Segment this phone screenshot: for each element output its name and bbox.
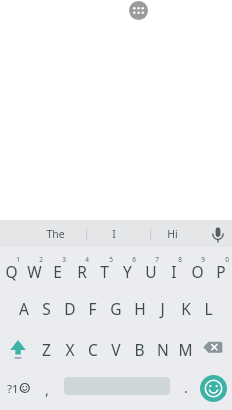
button[interactable]: Z xyxy=(35,329,58,370)
button[interactable]: , xyxy=(35,370,58,410)
button[interactable]: U xyxy=(139,247,162,288)
button[interactable]: I xyxy=(94,220,134,247)
button[interactable]: 8 xyxy=(175,254,185,264)
staticText: The xyxy=(46,227,65,241)
staticText: S xyxy=(42,298,51,319)
button[interactable] xyxy=(203,220,232,247)
button[interactable]: A xyxy=(12,288,35,329)
button[interactable]: Hi xyxy=(152,220,192,247)
button[interactable]: C xyxy=(81,329,104,370)
button[interactable]: 5 xyxy=(106,254,116,264)
staticText: L xyxy=(204,298,213,319)
button[interactable]: 2 xyxy=(36,254,46,264)
staticText: A xyxy=(19,298,29,319)
button[interactable]: 1 xyxy=(13,254,23,264)
button[interactable]: T xyxy=(93,247,116,288)
staticText: J xyxy=(160,298,165,319)
staticText: 9 xyxy=(201,255,205,264)
button[interactable]: G xyxy=(104,288,127,329)
staticText: V xyxy=(111,339,121,360)
button[interactable] xyxy=(129,1,148,20)
staticText: Y xyxy=(123,261,132,282)
staticText: 0 xyxy=(225,255,229,264)
staticText: T xyxy=(100,261,109,282)
staticText: ?1 xyxy=(7,381,19,397)
button[interactable]: I xyxy=(162,247,185,288)
button[interactable]: 4 xyxy=(82,254,92,264)
button[interactable]: H xyxy=(128,288,151,329)
button[interactable]: R xyxy=(70,247,93,288)
button[interactable]: 6 xyxy=(129,254,139,264)
button[interactable]: W xyxy=(23,247,46,288)
staticText: Z xyxy=(42,339,51,360)
staticText: E xyxy=(53,261,62,282)
button[interactable]: 0 xyxy=(222,254,232,264)
staticText: Q xyxy=(5,261,18,282)
button[interactable]: V xyxy=(104,329,127,370)
button[interactable]: The xyxy=(35,220,75,247)
button[interactable]: N xyxy=(151,329,174,370)
staticText: I xyxy=(112,227,116,241)
staticText: B xyxy=(134,339,145,360)
staticText: R xyxy=(77,261,87,282)
staticText: 8 xyxy=(178,255,182,264)
button[interactable]: J xyxy=(151,288,174,329)
staticText: I xyxy=(171,261,177,282)
button[interactable] xyxy=(197,329,232,370)
button[interactable]: 3 xyxy=(59,254,69,264)
button[interactable]: B xyxy=(128,329,151,370)
button[interactable]: S xyxy=(35,288,58,329)
staticText: 5 xyxy=(109,255,113,264)
button[interactable]: Q xyxy=(0,247,23,288)
staticText: D xyxy=(64,298,76,319)
button[interactable]: O xyxy=(186,247,209,288)
staticText: X xyxy=(65,339,75,360)
staticText: H xyxy=(134,298,146,319)
staticText: F xyxy=(88,298,97,319)
staticText: , xyxy=(45,380,49,399)
staticText: K xyxy=(181,298,191,319)
staticText: P xyxy=(216,261,226,282)
staticText: 7 xyxy=(155,255,159,264)
button[interactable]: . xyxy=(174,370,197,410)
button[interactable]: ?1 xyxy=(0,370,35,410)
staticText: M xyxy=(178,339,193,360)
staticText: O xyxy=(191,261,204,282)
button[interactable] xyxy=(0,329,35,370)
button[interactable]: X xyxy=(58,329,81,370)
staticText: C xyxy=(88,339,98,360)
button[interactable]: K xyxy=(174,288,197,329)
button[interactable]: E xyxy=(46,247,69,288)
staticText: 2 xyxy=(39,255,43,264)
staticText: 6 xyxy=(132,255,136,264)
button[interactable]: M xyxy=(174,329,197,370)
staticText: N xyxy=(157,339,169,360)
button[interactable]: F xyxy=(81,288,104,329)
button[interactable] xyxy=(200,375,227,402)
staticText: 1 xyxy=(16,255,20,264)
staticText: Hi xyxy=(167,227,178,241)
button[interactable]: 7 xyxy=(152,254,162,264)
button[interactable]: Y xyxy=(116,247,139,288)
button[interactable]: D xyxy=(58,288,81,329)
staticText: U xyxy=(145,261,157,282)
button[interactable]: L xyxy=(197,288,220,329)
button[interactable]: 9 xyxy=(198,254,208,264)
staticText: . xyxy=(184,378,188,397)
staticText: 4 xyxy=(85,255,89,264)
staticText: W xyxy=(27,261,42,282)
staticText: G xyxy=(110,298,122,319)
staticText: 3 xyxy=(62,255,66,264)
button[interactable]: P xyxy=(209,247,232,288)
